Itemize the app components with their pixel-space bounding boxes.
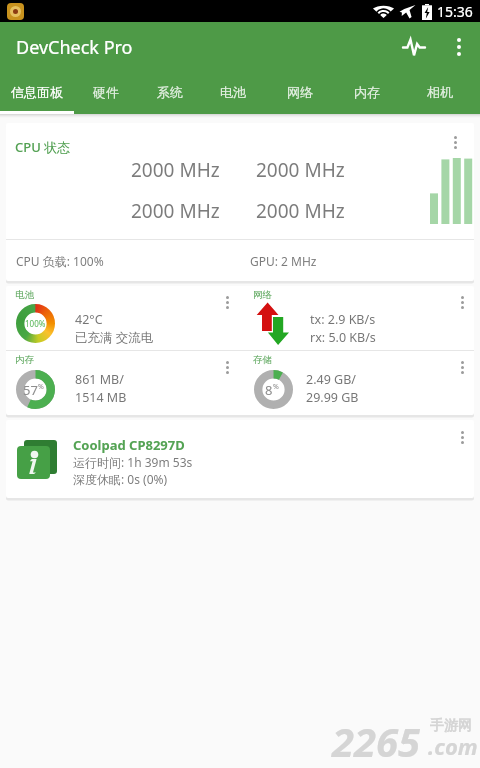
staticText: 2000 MHz	[256, 157, 345, 183]
button[interactable]: More options	[450, 290, 474, 314]
staticText: 电池	[220, 84, 246, 100]
button[interactable]: Monitor	[390, 23, 438, 71]
staticText: 1514 MB	[75, 389, 127, 406]
staticText: 861 MB/	[75, 371, 124, 388]
button[interactable]: 网络	[265, 72, 334, 114]
button[interactable]: 内存	[6, 351, 239, 415]
staticText: 手游网	[430, 717, 472, 735]
staticText: 信息面板	[11, 84, 63, 100]
staticText: 2.49 GB/	[306, 371, 356, 388]
staticText: 网络	[287, 84, 313, 100]
staticText: 内存	[15, 354, 34, 366]
staticText: 网络	[253, 289, 272, 301]
staticText: CPU 状态	[15, 138, 71, 156]
button[interactable]: 内存	[334, 72, 399, 114]
button[interactable]: 电池	[201, 72, 265, 114]
staticText: 电池	[15, 289, 34, 301]
staticText: %	[273, 382, 279, 392]
staticText: 运行时间: 1h 39m 53s	[73, 454, 193, 470]
staticText: 2000 MHz	[131, 157, 220, 183]
button[interactable]: More options	[438, 23, 480, 71]
staticText: 15:36	[437, 2, 473, 21]
staticText: rx: 5.0 KB/s	[310, 329, 376, 346]
staticText: .com	[428, 731, 478, 761]
button[interactable]: 硬件	[74, 72, 138, 114]
staticText: Coolpad CP8297D	[73, 436, 185, 454]
staticText: 已充满 交流电	[75, 329, 154, 346]
staticText: 相机	[427, 84, 453, 100]
staticText: 2265	[332, 714, 421, 768]
staticText: 存储	[253, 354, 272, 366]
button[interactable]: 信息面板	[0, 72, 74, 114]
staticText: 内存	[354, 84, 380, 100]
staticText: GPU: 2 MHz	[250, 253, 317, 269]
staticText: 42°C	[75, 311, 103, 328]
button[interactable]: 电池	[6, 286, 239, 351]
button[interactable]: 相机	[399, 72, 480, 114]
button[interactable]: 存储	[244, 351, 474, 415]
staticText: tx: 2.9 KB/s	[310, 311, 376, 328]
staticText: DevCheck Pro	[16, 35, 133, 60]
staticText: 深度休眠: 0s (0%)	[73, 471, 168, 487]
staticText: 29.99 GB	[306, 389, 359, 406]
button[interactable]: 网络	[244, 286, 474, 351]
staticText: 2000 MHz	[131, 198, 220, 224]
button[interactable]: 系统	[138, 72, 201, 114]
staticText: 100%	[25, 318, 46, 329]
button[interactable]: More options	[450, 425, 474, 449]
button[interactable]: More options	[443, 130, 467, 154]
staticText: 系统	[157, 84, 183, 100]
staticText: 硬件	[93, 84, 119, 100]
button[interactable]: Coolpad CP8297D	[6, 420, 474, 498]
button[interactable]: More options	[450, 355, 474, 379]
button[interactable]: More options	[215, 355, 239, 379]
staticText: 8	[265, 381, 273, 399]
staticText: 2000 MHz	[256, 198, 345, 224]
staticText: CPU 负载: 100%	[16, 253, 104, 269]
button[interactable]: More options	[215, 290, 239, 314]
staticText: %	[38, 382, 44, 392]
staticText: 57	[23, 381, 38, 399]
